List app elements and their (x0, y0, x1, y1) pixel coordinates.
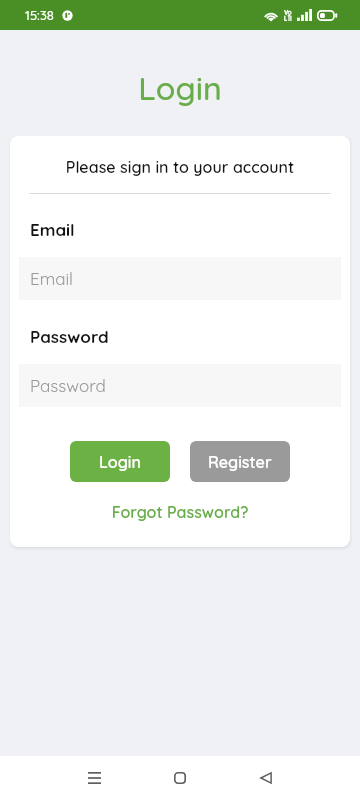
staticText: Password (30, 326, 109, 347)
staticText: Password (30, 375, 106, 396)
button[interactable]: Password (19, 364, 341, 407)
button[interactable]: Forgot Password? (10, 502, 350, 522)
staticText: 15:38 (25, 7, 54, 23)
button[interactable]: Register (190, 441, 290, 482)
staticText: Login (99, 452, 141, 472)
staticText: Please sign in to your account (10, 157, 350, 177)
button[interactable]: Recents (50, 756, 138, 800)
button[interactable]: Back (222, 756, 310, 800)
staticText: Email (30, 268, 74, 289)
button[interactable]: Login (70, 441, 170, 482)
staticText: Email (30, 219, 75, 240)
button[interactable]: Email (19, 257, 341, 300)
button[interactable]: Home (136, 756, 224, 800)
staticText: Login (0, 68, 360, 108)
staticText: Register (208, 452, 272, 472)
